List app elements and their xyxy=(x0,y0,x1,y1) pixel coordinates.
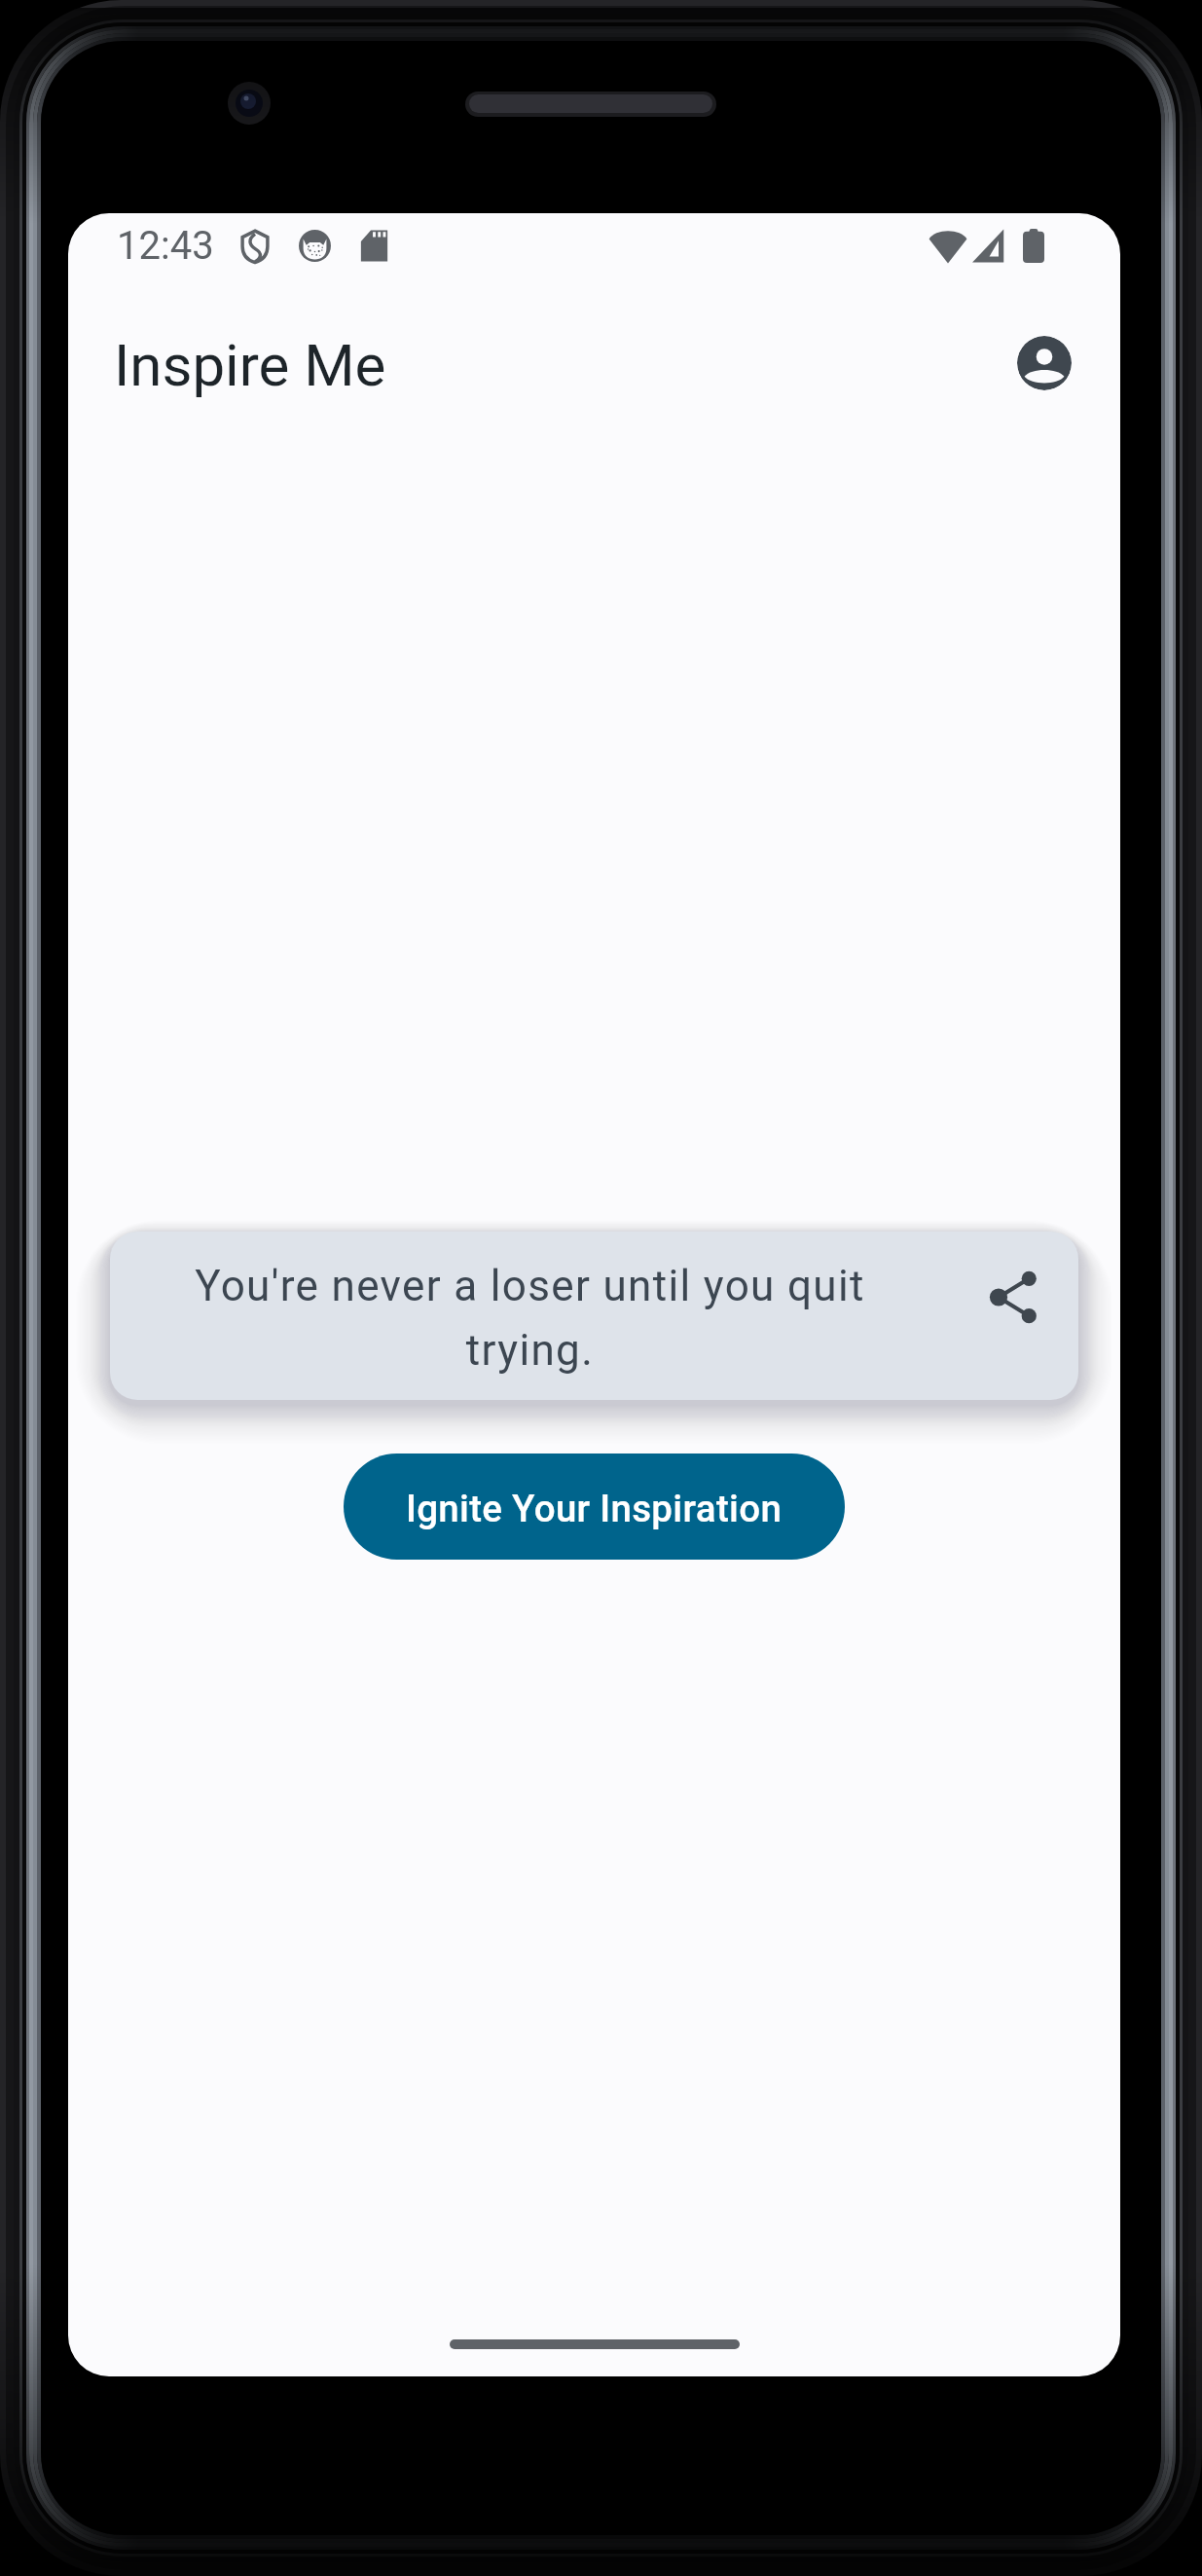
staticText: You're never a loser until you quit tryi… xyxy=(145,1261,915,1376)
staticText: Inspire Me xyxy=(114,331,386,399)
staticText: 12:43 xyxy=(117,223,214,269)
staticText: Ignite Your Inspiration xyxy=(406,1487,783,1530)
button[interactable]: Account xyxy=(1017,336,1072,390)
button[interactable]: Share xyxy=(950,1233,1078,1361)
button[interactable]: You're never a loser until you quit tryi… xyxy=(110,1232,1078,1400)
button[interactable]: Ignite Your Inspiration xyxy=(344,1454,845,1560)
